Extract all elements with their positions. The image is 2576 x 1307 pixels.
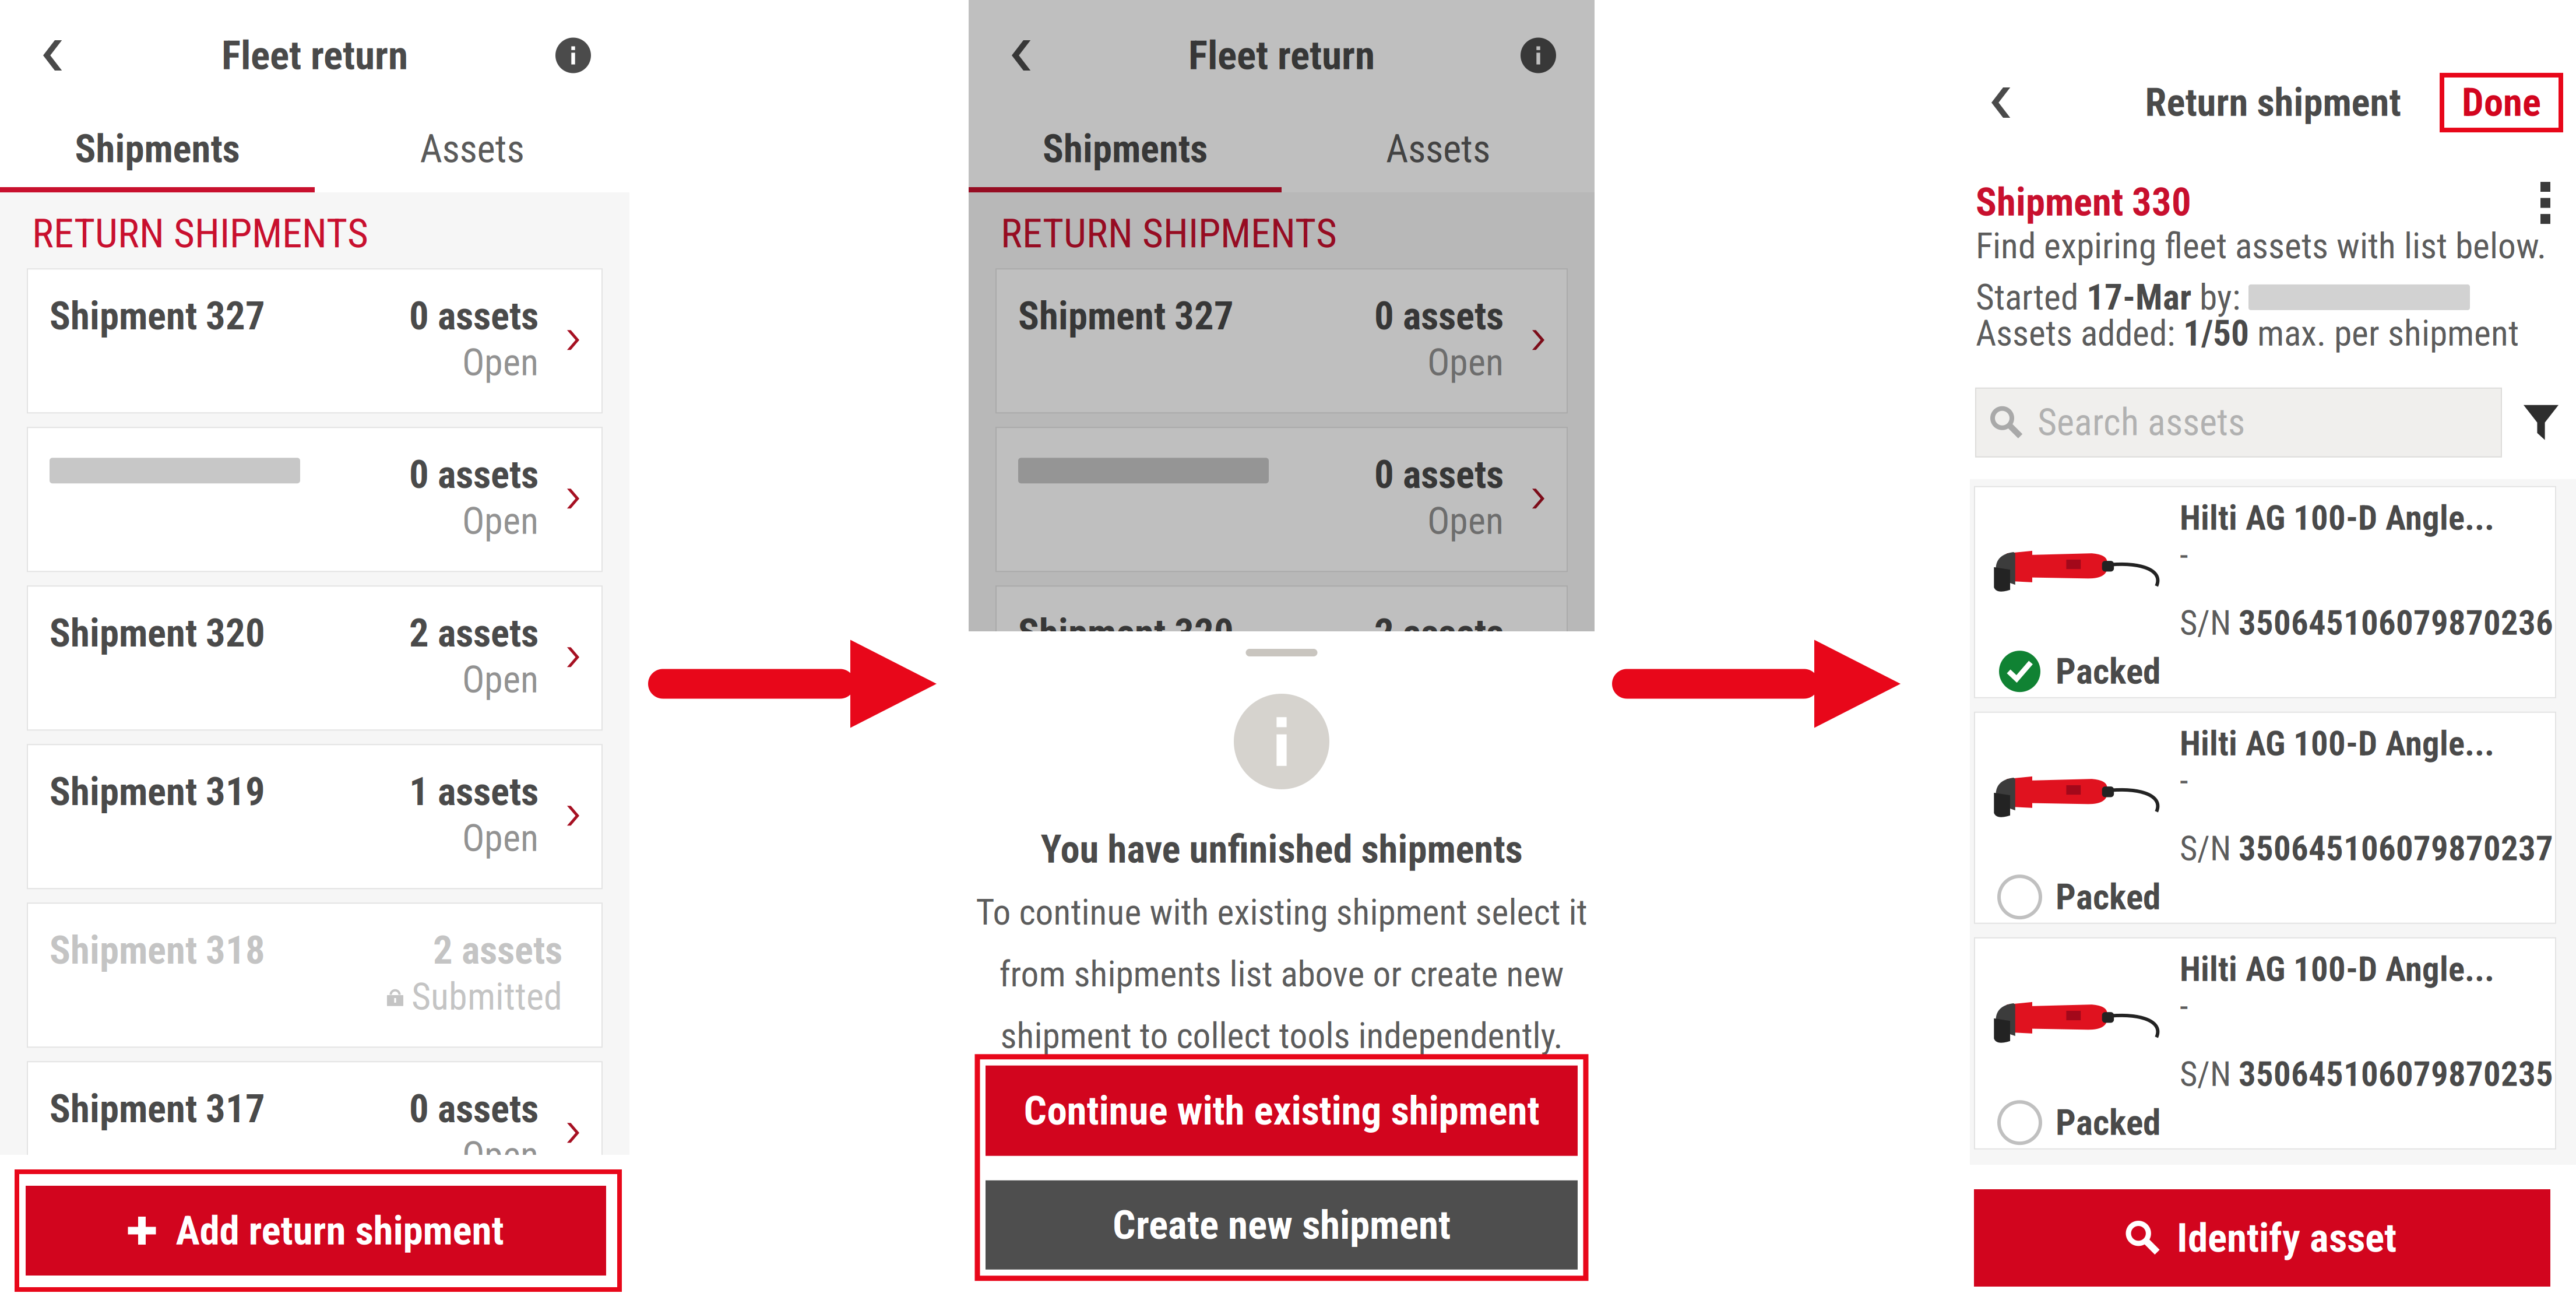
staticText: Hilti AG 100-D Angle...	[2180, 498, 2494, 538]
staticText: -	[2180, 761, 2188, 801]
staticText: Open	[462, 341, 539, 384]
staticText: Submitted	[411, 975, 562, 1019]
staticText: Identify asset	[2177, 1214, 2396, 1262]
button[interactable]: Create new shipment	[986, 1180, 1578, 1270]
staticText: Packed	[2056, 876, 2160, 918]
staticText: RETURN SHIPMENTS	[32, 210, 368, 257]
staticText: max. per shipment	[2249, 312, 2519, 354]
staticText: 0 assets	[409, 452, 539, 497]
staticText: Shipment 320	[50, 610, 265, 656]
button[interactable]: Hilti AG 100-D Angle...	[1975, 487, 2556, 698]
button[interactable]: Information	[532, 21, 629, 89]
staticText: Hilti AG 100-D Angle...	[2180, 724, 2494, 764]
staticText: 2 assets	[409, 610, 539, 656]
staticText: 1/50	[2183, 312, 2249, 354]
staticText: 0 assets	[1374, 293, 1504, 339]
staticText: RETURN SHIPMENTS	[1001, 210, 1337, 257]
button[interactable]: 0 assets	[996, 427, 1567, 571]
staticText: Shipment 317	[50, 1086, 265, 1132]
staticText: Assets	[420, 126, 524, 172]
staticText: You have unfinished shipments	[1041, 827, 1523, 872]
button[interactable]: Shipment 319	[27, 745, 602, 889]
button[interactable]: Information	[1497, 21, 1595, 89]
staticText: 350645106079870237	[2239, 829, 2553, 869]
staticText: Done	[2462, 80, 2541, 125]
staticText: Continue with existing shipment	[1024, 1087, 1539, 1134]
button[interactable]: Shipment 320	[996, 586, 1567, 730]
staticText: 350645106079870236	[2239, 603, 2553, 643]
staticText: S/N	[2180, 829, 2239, 869]
button[interactable]: Identify asset	[1974, 1189, 2550, 1287]
button[interactable]: Assets	[1282, 112, 1595, 186]
staticText: Add return shipment	[176, 1207, 504, 1254]
staticText: Shipment 319	[50, 769, 265, 815]
staticText: S/N	[2180, 603, 2239, 643]
staticText: Open	[1427, 341, 1504, 384]
staticText: 2 assets	[433, 928, 562, 973]
button[interactable]: Back	[969, 20, 1054, 90]
staticText: 0 assets	[409, 1086, 539, 1132]
staticText: Packed	[2056, 650, 2160, 692]
staticText: Started	[1976, 276, 2086, 318]
button[interactable]: Hilti AG 100-D Angle...	[1975, 938, 2556, 1149]
staticText: Assets	[1386, 126, 1490, 172]
staticText: Open	[462, 499, 539, 543]
staticText: Open	[1427, 499, 1504, 543]
staticText: Fleet return	[221, 32, 408, 79]
button[interactable]: Shipment 317	[27, 1062, 602, 1206]
staticText: To continue with existing shipment selec…	[976, 891, 1587, 933]
staticText: 350645106079870235	[2239, 1054, 2553, 1094]
button[interactable]: Filter	[2519, 405, 2563, 440]
staticText: from shipments list above or create new	[999, 953, 1564, 995]
staticText: S/N	[2180, 1054, 2239, 1094]
button[interactable]: Back	[0, 20, 85, 90]
staticText: Find expiring fleet assets with list bel…	[1976, 225, 2546, 267]
button[interactable]: Assets	[315, 112, 629, 186]
staticText: Open	[462, 658, 539, 702]
staticText: shipment to collect tools independently.	[1000, 1015, 1563, 1057]
button[interactable]: 0 assets	[27, 427, 602, 571]
staticText: Shipment 320	[1018, 610, 1234, 656]
staticText: 17-Mar	[2086, 276, 2191, 318]
staticText: 0 assets	[409, 293, 539, 339]
staticText: Open	[462, 816, 539, 860]
staticText: Packed	[2056, 1102, 2160, 1144]
staticText: Shipment 327	[1018, 293, 1234, 339]
staticText: 0 assets	[1374, 452, 1504, 497]
staticText: Shipment 330	[1976, 180, 2191, 225]
button[interactable]: More options	[2528, 180, 2563, 224]
staticText: Create new shipment	[1113, 1201, 1451, 1249]
staticText: 1 assets	[409, 769, 539, 815]
staticText: Fleet return	[1188, 32, 1375, 79]
button[interactable]: Shipments	[969, 112, 1282, 186]
staticText: Shipment 318	[50, 928, 265, 973]
staticText: by:	[2191, 276, 2248, 318]
button[interactable]: Hilti AG 100-D Angle...	[1975, 712, 2556, 923]
button[interactable]: Shipment 318	[27, 903, 602, 1047]
button[interactable]: Shipment 327	[996, 269, 1567, 413]
staticText: Return shipment	[2145, 80, 2401, 125]
staticText: Shipments	[75, 126, 240, 172]
staticText: Shipments	[1043, 126, 1208, 172]
staticText: Assets added:	[1976, 312, 2183, 354]
staticText: Hilti AG 100-D Angle...	[2180, 949, 2494, 989]
button[interactable]: Shipment 327	[27, 269, 602, 413]
staticText: Shipment 327	[50, 293, 265, 339]
button[interactable]: Back	[1970, 66, 2034, 139]
staticText: Search assets	[2037, 401, 2245, 444]
button[interactable]: Done	[2442, 75, 2576, 130]
button[interactable]: Continue with existing shipment	[986, 1065, 1578, 1156]
button[interactable]: Shipments	[0, 112, 315, 186]
staticText: Open	[462, 1134, 539, 1177]
staticText: -	[2180, 535, 2188, 575]
button[interactable]: Shipment 320	[27, 586, 602, 730]
staticText: -	[2180, 987, 2188, 1027]
staticText: 2 assets	[1374, 610, 1504, 656]
button[interactable]: Add return shipment	[26, 1186, 606, 1276]
